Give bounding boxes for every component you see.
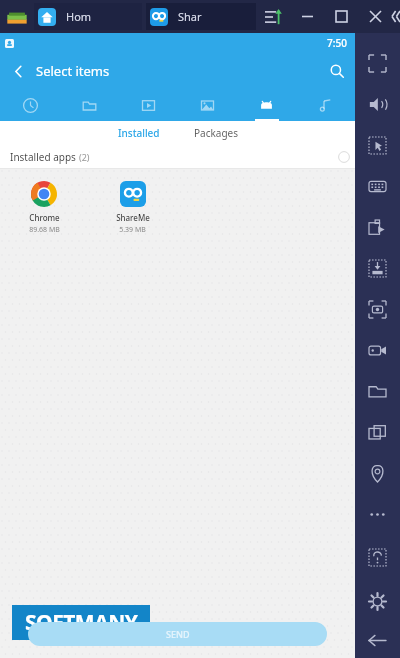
staticText: Chrome bbox=[29, 212, 60, 223]
button[interactable]: Videos bbox=[119, 89, 178, 121]
button[interactable]: Folder bbox=[355, 371, 400, 412]
staticText: Shar bbox=[178, 9, 202, 24]
button[interactable]: Packages bbox=[184, 123, 248, 143]
button[interactable]: Close bbox=[358, 0, 392, 33]
staticText: Hom bbox=[66, 9, 92, 24]
button[interactable]: Minimize bbox=[290, 0, 324, 33]
button[interactable]: Upload bbox=[256, 0, 290, 33]
button[interactable]: Settings bbox=[355, 579, 400, 623]
staticText: 7:50 bbox=[327, 36, 347, 50]
button[interactable]: Apps bbox=[237, 89, 296, 121]
staticText: Installed bbox=[118, 126, 160, 140]
button[interactable]: Volume bbox=[355, 84, 400, 125]
button[interactable]: Apk bbox=[355, 248, 400, 289]
button[interactable]: Screenshot bbox=[355, 289, 400, 330]
staticText: 5.39 MB bbox=[119, 225, 146, 235]
button[interactable]: Back bbox=[0, 53, 36, 89]
button[interactable]: ShareMe bbox=[88, 177, 177, 239]
button[interactable]: Multi window bbox=[355, 412, 400, 453]
button[interactable]: Maximize bbox=[324, 0, 358, 33]
button[interactable]: Search bbox=[319, 53, 355, 89]
staticText: (2) bbox=[79, 151, 90, 163]
button[interactable]: More bbox=[355, 494, 400, 535]
button[interactable]: Hom bbox=[34, 3, 142, 30]
button[interactable]: Chrome bbox=[0, 177, 88, 239]
button[interactable]: Collapse bbox=[392, 0, 400, 33]
button[interactable]: SEND bbox=[28, 622, 327, 646]
button[interactable]: Keyboard bbox=[355, 166, 400, 207]
button[interactable]: Select bbox=[355, 125, 400, 166]
staticText: 89.68 MB bbox=[29, 225, 60, 235]
staticText: SEND bbox=[166, 628, 190, 640]
button[interactable]: Record bbox=[355, 330, 400, 371]
button[interactable]: Fullscreen bbox=[355, 43, 400, 84]
button[interactable]: Photos bbox=[178, 89, 237, 121]
button[interactable]: Music bbox=[296, 89, 355, 121]
button[interactable]: Shar bbox=[146, 3, 256, 30]
staticText: Installed apps bbox=[10, 150, 76, 164]
button[interactable]: Files bbox=[60, 89, 119, 121]
button[interactable]: Help bbox=[355, 535, 400, 579]
button[interactable]: Select all bbox=[333, 146, 355, 168]
button[interactable]: Back bbox=[355, 623, 400, 658]
staticText: ShareMe bbox=[116, 212, 150, 223]
staticText: Select items bbox=[36, 62, 110, 80]
button[interactable]: Location bbox=[355, 453, 400, 494]
button[interactable]: Apk install bbox=[355, 207, 400, 248]
button[interactable]: Installed bbox=[108, 123, 170, 143]
staticText: Packages bbox=[194, 126, 238, 140]
button[interactable]: Recent bbox=[0, 89, 60, 121]
staticText: SOFTMANY bbox=[25, 608, 138, 637]
